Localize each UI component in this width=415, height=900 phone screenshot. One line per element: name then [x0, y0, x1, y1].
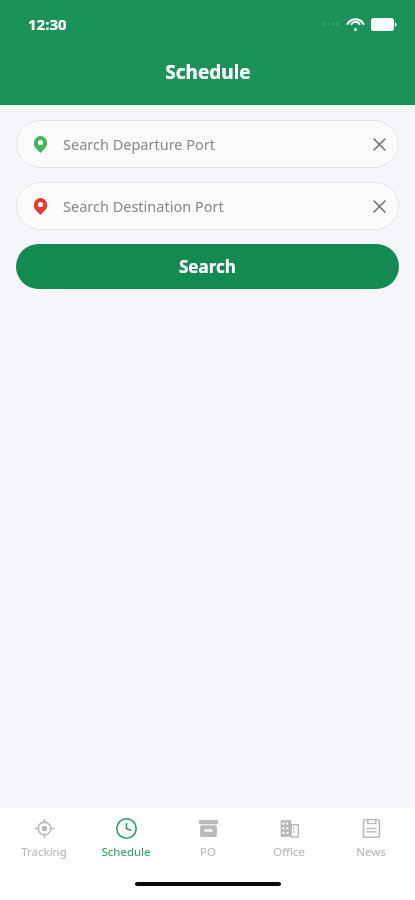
button[interactable]: News — [333, 814, 409, 864]
button[interactable]: Search Destination Port — [16, 182, 399, 230]
button[interactable]: Schedule — [88, 814, 164, 864]
staticText: News — [356, 844, 386, 860]
button[interactable]: Clear Departure port — [359, 124, 399, 164]
staticText: Search Destination Port — [63, 196, 359, 216]
staticText: PO — [200, 844, 216, 860]
staticText: Search — [179, 255, 236, 278]
staticText: Search Departure Port — [63, 134, 359, 154]
button[interactable]: PO — [170, 814, 246, 864]
staticText: Schedule — [165, 59, 251, 85]
staticText: Tracking — [21, 844, 67, 860]
staticText: Office — [273, 844, 305, 860]
staticText: 12:30 — [28, 14, 67, 34]
button[interactable]: Tracking — [6, 814, 82, 864]
staticText: Schedule — [101, 844, 151, 860]
button[interactable]: Search — [16, 244, 399, 289]
button[interactable]: Search Departure Port — [16, 120, 399, 168]
button[interactable]: Clear Destination port — [359, 186, 399, 226]
button[interactable]: Office — [251, 814, 327, 864]
